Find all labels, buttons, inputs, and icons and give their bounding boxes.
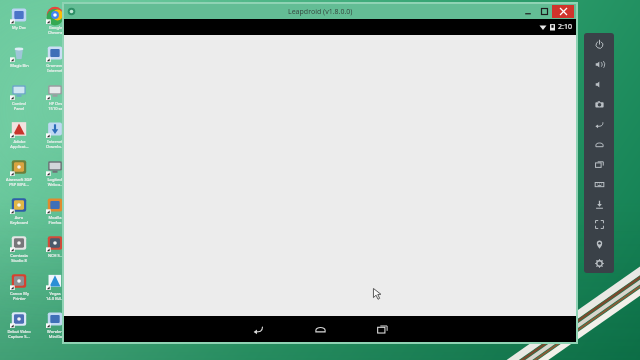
button[interactable]: Google Chrome bbox=[38, 6, 72, 35]
staticText: Wonders MiniGo bbox=[47, 329, 64, 339]
button[interactable]: Wonders MiniGo bbox=[38, 310, 72, 339]
staticText: Vegas 14.0 (64... bbox=[46, 291, 64, 301]
staticText: Avro Keyboard bbox=[10, 215, 28, 225]
staticText: Aiseesoft 3GP PSP MP4... bbox=[6, 177, 32, 187]
button[interactable]: Aiseesoft 3GP PSP MP4... bbox=[2, 158, 36, 187]
staticText: NCH S... bbox=[48, 253, 63, 258]
button[interactable]: Maximize bbox=[536, 5, 552, 18]
staticText: HP Des 1510 se bbox=[48, 101, 63, 111]
button[interactable]: Back bbox=[245, 316, 271, 342]
staticText: Google Chrome bbox=[48, 25, 63, 35]
button[interactable]: Magic Bin bbox=[2, 44, 36, 68]
button[interactable]: Back bbox=[586, 117, 612, 132]
button[interactable]: Logitech Webca... bbox=[38, 158, 72, 187]
button[interactable]: Home bbox=[586, 137, 612, 152]
button[interactable]: Vegas 14.0 (64... bbox=[38, 272, 72, 301]
button[interactable]: Mozilla Firefox bbox=[38, 196, 72, 225]
button[interactable]: Location bbox=[586, 237, 612, 252]
staticText: Grameen Internet bbox=[46, 63, 64, 73]
button[interactable]: NCH S... bbox=[38, 234, 72, 258]
staticText: Control Panel bbox=[12, 101, 26, 111]
staticText: Mozilla Firefox bbox=[48, 215, 62, 225]
staticText: Logitech Webca... bbox=[47, 177, 64, 187]
button[interactable]: Settings bbox=[586, 257, 612, 269]
staticText: 2:10 bbox=[558, 22, 572, 32]
staticText: Camtasia Studio 8 bbox=[10, 253, 28, 263]
button[interactable]: Power bbox=[586, 37, 612, 52]
button[interactable]: Debut Video Capture S... bbox=[2, 310, 36, 339]
staticText: Canon My Printer bbox=[10, 291, 29, 301]
staticText: Debut Video Capture S... bbox=[7, 329, 31, 339]
button[interactable]: Canon My Printer bbox=[2, 272, 36, 301]
button[interactable]: Avro Keyboard bbox=[2, 196, 36, 225]
button[interactable]: Adobe Applicat... bbox=[2, 120, 36, 149]
button[interactable]: Volume up bbox=[586, 57, 612, 72]
button[interactable]: Volume down bbox=[586, 77, 612, 92]
button[interactable]: Recents bbox=[369, 316, 395, 342]
button[interactable]: Minimize bbox=[520, 5, 536, 18]
button[interactable]: Internet Downlo... bbox=[38, 120, 72, 149]
button[interactable]: Keyboard bbox=[586, 177, 612, 192]
button[interactable]: Recents bbox=[586, 157, 612, 172]
button[interactable]: Grameen Internet bbox=[38, 44, 72, 73]
button[interactable]: HP Des 1510 se bbox=[38, 82, 72, 111]
staticText: Adobe Applicat... bbox=[10, 139, 29, 149]
button[interactable]: Screenshot bbox=[586, 97, 612, 112]
button[interactable]: Camtasia Studio 8 bbox=[2, 234, 36, 263]
button[interactable]: Control Panel bbox=[2, 82, 36, 111]
button[interactable]: Home bbox=[307, 316, 333, 342]
staticText: Internet Downlo... bbox=[46, 139, 64, 149]
button[interactable]: Close bbox=[552, 5, 574, 18]
staticText: Leapdroid (v1.8.0.0) bbox=[288, 7, 353, 17]
button[interactable]: Full screen bbox=[586, 217, 612, 232]
button[interactable]: My Doc bbox=[2, 6, 36, 30]
staticText: My Doc bbox=[12, 25, 26, 30]
staticText: Magic Bin bbox=[10, 63, 29, 68]
button[interactable]: Install APK bbox=[586, 197, 612, 212]
